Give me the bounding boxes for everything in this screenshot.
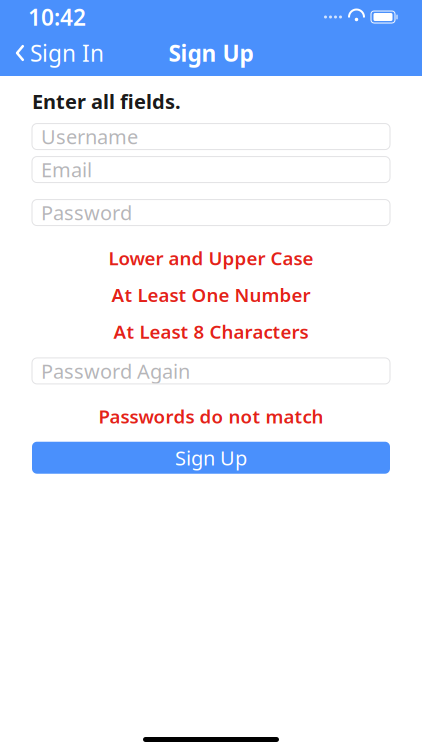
button[interactable]: Sign In — [0, 34, 114, 72]
staticText: Lower and Upper Case — [108, 246, 313, 270]
staticText: Email — [41, 156, 92, 183]
button[interactable]: Sign Up — [32, 442, 390, 474]
staticText: Enter all fields. — [32, 88, 181, 115]
staticText: Password — [41, 199, 132, 226]
staticText: Passwords do not match — [98, 404, 323, 429]
staticText: Password Again — [41, 358, 190, 384]
staticText: Sign In — [30, 38, 104, 68]
staticText: Username — [41, 123, 138, 150]
staticText: At Least 8 Characters — [113, 319, 308, 344]
staticText: 10:42 — [28, 2, 86, 32]
staticText: At Least One Number — [111, 282, 310, 307]
staticText: Sign Up — [168, 38, 253, 68]
staticText: Sign Up — [175, 444, 247, 471]
